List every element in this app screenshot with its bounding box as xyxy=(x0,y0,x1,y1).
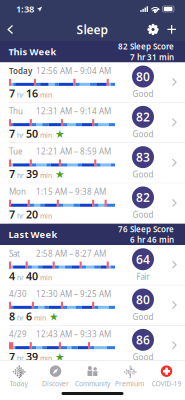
staticText: Tue xyxy=(9,146,23,157)
staticText: 12:31 AM – 9:14 AM xyxy=(36,106,111,116)
staticText: 4/29 xyxy=(9,329,27,339)
button[interactable]: Premium xyxy=(111,364,148,390)
staticText: hr xyxy=(15,90,26,99)
staticText: hr xyxy=(15,171,26,180)
staticText: COVID-19 xyxy=(151,379,181,388)
staticText: Good xyxy=(132,209,153,220)
staticText: This Week xyxy=(8,46,56,58)
staticText: Today xyxy=(9,379,27,388)
staticText: 86 xyxy=(136,332,150,348)
staticText: 12:56 AM – 9:04 AM xyxy=(36,65,111,76)
staticText: 7 xyxy=(9,207,15,221)
staticText: 12:30 AM – 9:25 AM xyxy=(36,288,111,299)
staticText: Sleep xyxy=(76,21,108,37)
staticText: Good xyxy=(132,129,153,139)
staticText: 7 xyxy=(9,86,15,100)
staticText: ★ xyxy=(46,311,59,323)
staticText: 39 xyxy=(26,167,38,181)
staticText: 1:15 AM – 9:38 AM xyxy=(36,186,106,197)
staticText: 7 xyxy=(9,350,15,364)
staticText: min xyxy=(38,90,52,99)
staticText: ★ xyxy=(52,351,65,363)
staticText: Good xyxy=(132,88,153,99)
staticText: 12:43 AM – 9:33 AM xyxy=(36,329,111,339)
staticText: hr xyxy=(15,131,26,140)
staticText: 80 xyxy=(136,292,150,307)
staticText: 83 xyxy=(136,149,150,165)
staticText: min xyxy=(38,273,52,282)
staticText: ★ xyxy=(52,168,65,180)
button[interactable]: 4/30 xyxy=(0,285,185,326)
staticText: 7 xyxy=(9,127,15,141)
staticText: Discover xyxy=(42,379,69,388)
staticText: Last Week xyxy=(8,228,57,241)
staticText: min xyxy=(38,354,52,363)
button[interactable]: Mon xyxy=(0,183,185,224)
staticText: Today xyxy=(9,65,32,76)
staticText: 7 xyxy=(9,167,15,181)
staticText: 8 xyxy=(9,309,15,323)
staticText: Fair xyxy=(136,271,149,282)
staticText: hr xyxy=(15,211,26,220)
staticText: min xyxy=(38,131,52,140)
staticText: hr xyxy=(15,313,26,322)
button[interactable]: Community xyxy=(74,364,111,390)
button[interactable]: COVID-19 xyxy=(148,364,185,390)
staticText: 4/30 xyxy=(9,288,27,299)
staticText: hr xyxy=(15,273,26,282)
button[interactable]: Today xyxy=(0,62,185,103)
staticText: min xyxy=(38,211,52,220)
button[interactable]: Back xyxy=(2,19,19,40)
staticText: Good xyxy=(132,352,153,362)
staticText: 16 xyxy=(26,86,38,100)
staticText: 4 xyxy=(9,269,15,283)
button[interactable]: Thu xyxy=(0,103,185,143)
staticText: 76 Sleep Score xyxy=(118,224,174,234)
button[interactable]: Today xyxy=(0,364,37,390)
button[interactable]: Add xyxy=(162,19,181,40)
staticText: 82 xyxy=(136,109,150,125)
button[interactable]: 4/29 xyxy=(0,326,185,366)
staticText: Good xyxy=(132,311,153,322)
staticText: 6 xyxy=(26,309,32,323)
button[interactable]: Tue xyxy=(0,143,185,183)
button[interactable]: Sat xyxy=(0,245,185,285)
staticText: min xyxy=(32,313,46,322)
staticText: 1:38 xyxy=(16,3,34,15)
staticText: 64 xyxy=(136,251,150,267)
staticText: 6 hr 46 min xyxy=(130,234,174,245)
staticText: Sat xyxy=(9,248,20,259)
button[interactable]: Settings xyxy=(143,19,162,40)
staticText: 82 xyxy=(136,189,150,205)
staticText: Good xyxy=(132,169,153,180)
staticText: ★ xyxy=(52,128,65,140)
staticText: 40 xyxy=(26,269,38,283)
staticText: 50 xyxy=(26,127,38,141)
staticText: 12:21 AM – 8:59 AM xyxy=(36,146,111,157)
staticText: min xyxy=(38,171,52,180)
staticText: 7 hr 31 min xyxy=(130,52,174,62)
button[interactable]: Discover xyxy=(37,364,74,390)
staticText: Premium xyxy=(115,379,144,388)
staticText: Thu xyxy=(9,106,23,116)
staticText: 39 xyxy=(26,350,38,364)
staticText: Community xyxy=(75,379,110,388)
staticText: Mon xyxy=(9,186,26,197)
staticText: 82 Sleep Score xyxy=(118,41,174,52)
staticText: 80 xyxy=(136,69,150,84)
staticText: 20 xyxy=(26,207,38,221)
staticText: 2:58 AM – 8:27 AM xyxy=(36,248,106,259)
staticText: hr xyxy=(15,354,26,363)
